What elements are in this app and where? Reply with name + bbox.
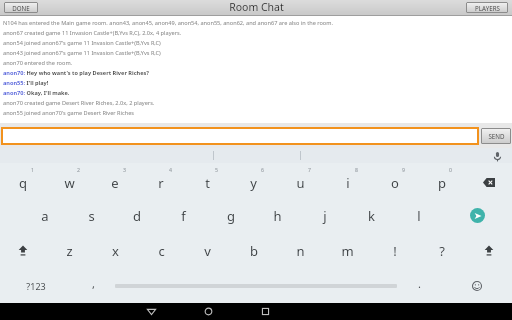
staticText: 0 — [449, 166, 452, 173]
button[interactable]: ?123 — [0, 268, 71, 303]
button[interactable]: a — [22, 198, 68, 233]
staticText: anon43 joined anon67's game 11 Invasion … — [3, 49, 161, 57]
staticText: b — [250, 242, 258, 260]
button[interactable]: x — [92, 233, 138, 268]
staticText: s — [88, 207, 95, 225]
staticText: N104 has entered the Main game room. ano… — [3, 19, 333, 27]
staticText: t — [205, 174, 210, 192]
button[interactable]: Home — [197, 303, 219, 320]
staticText: anon54 joined anon67's game 11 Invasion … — [3, 39, 161, 47]
button[interactable]: l — [395, 198, 442, 233]
staticText: 2 — [77, 166, 80, 173]
button[interactable]: Space — [115, 279, 397, 292]
button[interactable]: Shift — [465, 233, 512, 268]
staticText: anon70 created game Desert River Riches,… — [3, 99, 155, 107]
button[interactable]: f — [160, 198, 207, 233]
button[interactable]: 5 — [184, 163, 230, 198]
button[interactable]: 6 — [230, 163, 277, 198]
staticText: PLAYERS — [475, 4, 500, 12]
staticText: g — [227, 207, 235, 225]
staticText: 6 — [261, 166, 264, 173]
staticText: f — [181, 207, 186, 225]
button[interactable]: b — [230, 233, 277, 268]
button[interactable]: 1 — [0, 163, 46, 198]
staticText: 8 — [355, 166, 358, 173]
staticText: anon70 entered the room. — [3, 59, 73, 67]
button[interactable]: Voice input — [490, 149, 504, 163]
staticText: r — [158, 174, 164, 192]
staticText: w — [64, 174, 75, 192]
staticText: anon55: I'll play! — [3, 79, 49, 87]
button[interactable]: Emoji — [441, 268, 512, 303]
button[interactable]: 7 — [277, 163, 324, 198]
button[interactable]: j — [301, 198, 348, 233]
button[interactable]: c — [138, 233, 184, 268]
staticText: 7 — [308, 166, 311, 173]
staticText: v — [204, 242, 211, 260]
staticText: z — [66, 242, 73, 260]
button[interactable]: 3 — [92, 163, 138, 198]
button[interactable]: ! — [371, 233, 418, 268]
staticText: DONE — [12, 4, 30, 12]
button[interactable]: 0 — [418, 163, 465, 198]
staticText: . — [418, 276, 421, 291]
button[interactable]: z — [46, 233, 92, 268]
staticText: 5 — [215, 166, 218, 173]
staticText: y — [250, 174, 257, 192]
staticText: ? — [439, 242, 445, 260]
button[interactable]: Enter — [442, 198, 512, 233]
staticText: d — [133, 207, 141, 225]
staticText: 3 — [123, 166, 126, 173]
staticText: anon55 joined anon70's game Desert River… — [3, 109, 134, 117]
staticText: m — [341, 242, 354, 260]
button[interactable]: 2 — [46, 163, 92, 198]
button[interactable]: v — [184, 233, 230, 268]
button[interactable]: PLAYERS — [466, 2, 508, 13]
staticText: Room Chat — [229, 0, 284, 14]
staticText: n — [296, 242, 305, 260]
staticText: h — [273, 207, 282, 225]
staticText: c — [158, 242, 165, 260]
button[interactable]: . — [397, 268, 441, 303]
staticText: 9 — [402, 166, 405, 173]
button[interactable]: g — [207, 198, 254, 233]
staticText: anon70: Okay, I'll make. — [3, 89, 70, 97]
staticText: ! — [393, 242, 397, 260]
button[interactable]: 9 — [371, 163, 418, 198]
staticText: 4 — [169, 166, 172, 173]
staticText: anon70: Hey who want's to play Desert Ri… — [3, 69, 150, 77]
button[interactable]: ? — [418, 233, 465, 268]
button[interactable]: m — [324, 233, 371, 268]
staticText: anon67 created game 11 Invasion Castle+(… — [3, 29, 182, 37]
staticText: i — [346, 174, 350, 192]
button[interactable] — [1, 127, 479, 145]
button[interactable]: d — [114, 198, 160, 233]
button[interactable]: 4 — [138, 163, 184, 198]
staticText: 1 — [31, 166, 34, 173]
button[interactable]: Shift — [0, 233, 46, 268]
staticText: u — [296, 174, 305, 192]
staticText: o — [391, 174, 399, 192]
button[interactable]: h — [254, 198, 301, 233]
staticText: p — [438, 174, 446, 192]
button[interactable]: Backspace — [465, 163, 512, 198]
staticText: x — [112, 242, 119, 260]
staticText: e — [111, 174, 119, 192]
staticText: l — [417, 207, 421, 225]
staticText: , — [92, 276, 95, 291]
button[interactable]: Recents — [254, 303, 276, 320]
staticText: k — [368, 207, 375, 225]
staticText: j — [323, 207, 327, 225]
button[interactable]: n — [277, 233, 324, 268]
staticText: SEND — [488, 132, 505, 140]
staticText: q — [19, 174, 27, 192]
staticText: ?123 — [26, 280, 46, 292]
button[interactable]: Back — [140, 303, 162, 320]
button[interactable]: s — [68, 198, 114, 233]
button[interactable]: k — [348, 198, 395, 233]
staticText: a — [41, 207, 49, 225]
button[interactable]: 8 — [324, 163, 371, 198]
button[interactable]: SEND — [481, 128, 511, 144]
button[interactable]: , — [71, 268, 115, 303]
button[interactable]: DONE — [4, 2, 38, 13]
